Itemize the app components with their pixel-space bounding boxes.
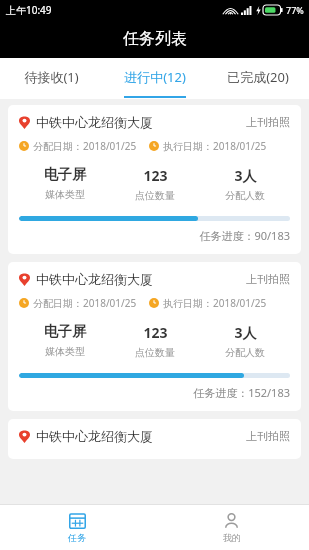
staticText: 执行日期：2018/01/25 — [163, 296, 267, 310]
staticText: 任务进度：90/183 — [19, 228, 290, 243]
button[interactable]: 任务 — [0, 504, 154, 550]
staticText: 上刊拍照 — [246, 429, 290, 443]
button[interactable]: 我的 — [154, 504, 309, 550]
staticText: 77% — [286, 4, 304, 16]
staticText: 3人 — [234, 323, 257, 342]
staticText: 分配日期：2018/01/25 — [33, 296, 137, 310]
staticText: 分配人数 — [225, 189, 265, 202]
staticText: 任务列表 — [123, 29, 187, 49]
staticText: 已完成(20) — [227, 68, 289, 86]
staticText: 进行中(12) — [124, 68, 186, 86]
staticText: 我的 — [223, 532, 241, 543]
staticText: 电子屏 — [44, 323, 86, 341]
staticText: 电子屏 — [44, 166, 86, 184]
staticText: 媒体类型 — [45, 188, 85, 201]
staticText: 上刊拍照 — [246, 115, 290, 129]
staticText: 任务进度：152/183 — [19, 385, 290, 400]
staticText: 任务 — [68, 532, 86, 543]
button[interactable]: 中铁中心龙绍衡大厦 — [8, 105, 301, 254]
staticText: 点位数量 — [135, 346, 175, 359]
staticText: 待接收(1) — [24, 68, 79, 86]
button[interactable]: 中铁中心龙绍衡大厦 — [8, 262, 301, 411]
staticText: 3人 — [234, 166, 257, 185]
staticText: 点位数量 — [135, 189, 175, 202]
button[interactable]: 待接收(1) — [0, 58, 103, 96]
staticText: 执行日期：2018/01/25 — [163, 139, 267, 153]
staticText: 中铁中心龙绍衡大厦 — [36, 271, 153, 287]
staticText: 上午10:49 — [6, 3, 52, 17]
staticText: 分配人数 — [225, 346, 265, 359]
staticText: 123 — [143, 166, 168, 185]
staticText: 123 — [143, 323, 168, 342]
staticText: 上刊拍照 — [246, 272, 290, 286]
button[interactable]: 已完成(20) — [206, 58, 309, 96]
staticText: 媒体类型 — [45, 345, 85, 358]
staticText: 中铁中心龙绍衡大厦 — [36, 114, 153, 130]
button[interactable]: 进行中(12) — [103, 58, 206, 96]
staticText: 分配日期：2018/01/25 — [33, 139, 137, 153]
staticText: 中铁中心龙绍衡大厦 — [36, 428, 153, 444]
button[interactable]: 中铁中心龙绍衡大厦 — [8, 419, 301, 459]
